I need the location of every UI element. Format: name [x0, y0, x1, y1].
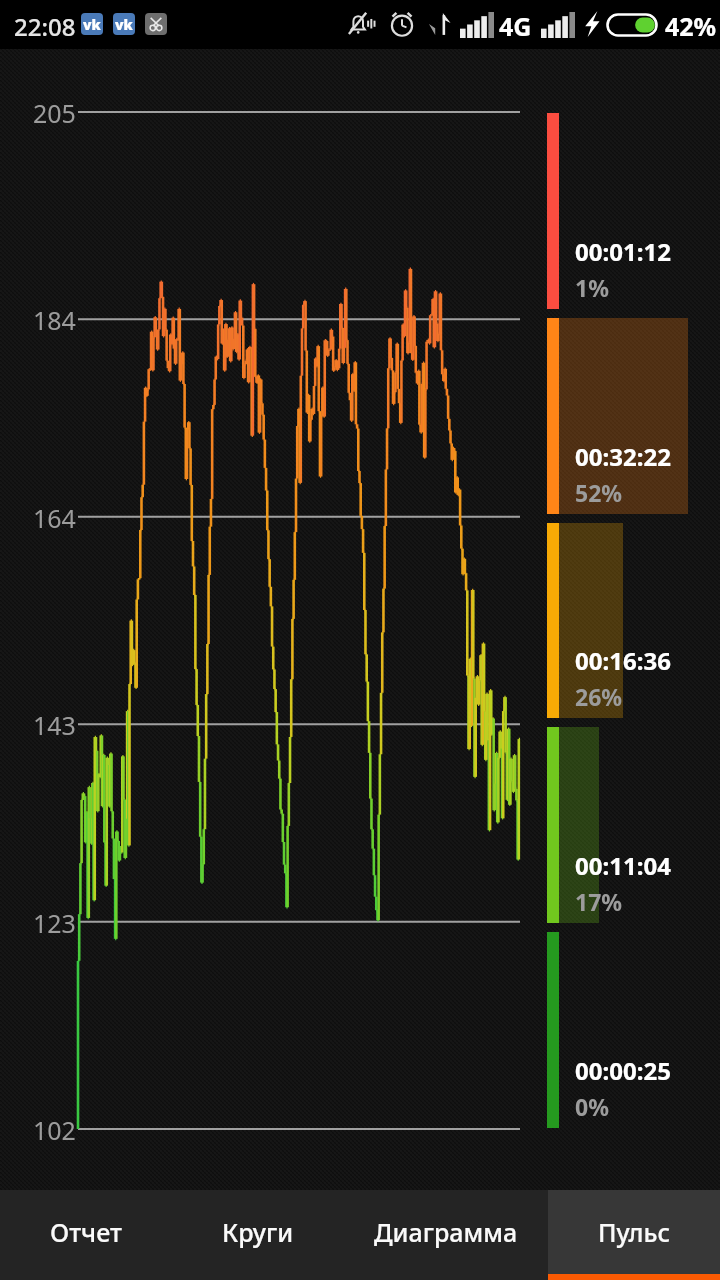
staticText: 00:32:22 [575, 440, 671, 473]
button[interactable]: 00:16:36 [547, 523, 720, 718]
staticText: 123 [33, 906, 76, 940]
staticText: 42% [665, 9, 717, 43]
other: Signal strength [541, 12, 575, 38]
staticText: 00:16:36 [575, 644, 671, 677]
other: Silent mode [347, 10, 379, 38]
staticText: 17% [575, 886, 623, 917]
staticText: 164 [33, 501, 76, 535]
other: Charging [583, 10, 601, 38]
other: Data transfer [428, 11, 452, 37]
other: Alarm [388, 10, 416, 38]
staticText: 205 [33, 96, 76, 130]
staticText: vk [83, 15, 101, 34]
button[interactable]: Пульс [548, 1190, 720, 1280]
button[interactable]: 00:01:12 [547, 113, 720, 309]
staticText: 52% [575, 477, 623, 508]
staticText: Круги [222, 1215, 294, 1249]
staticText: 00:00:25 [575, 1054, 671, 1087]
button[interactable]: Диаграмма [344, 1190, 548, 1280]
staticText: 1% [575, 272, 609, 303]
staticText: vk [115, 15, 133, 34]
staticText: 184 [33, 303, 76, 337]
button[interactable]: 00:00:25 [547, 932, 720, 1128]
staticText: 0% [575, 1091, 609, 1122]
button[interactable]: Круги [172, 1190, 344, 1280]
staticText: Пульс [598, 1215, 670, 1249]
staticText: Диаграмма [374, 1215, 518, 1249]
button[interactable]: 00:32:22 [547, 318, 720, 514]
button[interactable]: Отчет [0, 1190, 172, 1280]
staticText: 22:08 [14, 10, 76, 43]
staticText: 102 [33, 1113, 76, 1147]
staticText: 26% [575, 681, 623, 712]
other: Battery [606, 13, 658, 37]
button[interactable]: 00:11:04 [547, 727, 720, 923]
other: Screenshot [145, 13, 167, 35]
staticText: Отчет [50, 1215, 122, 1249]
other: Signal strength [460, 12, 494, 38]
staticText: 143 [33, 708, 76, 742]
staticText: 00:11:04 [575, 849, 671, 882]
staticText: 4G [499, 9, 532, 43]
staticText: 00:01:12 [575, 235, 671, 268]
